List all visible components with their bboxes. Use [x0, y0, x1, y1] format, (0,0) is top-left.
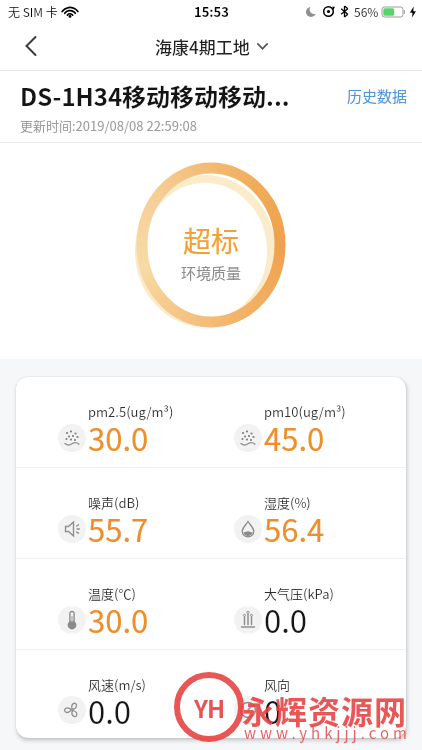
staticText: 大气压(kPa): [264, 584, 334, 603]
button[interactable]: 历史数据: [347, 85, 408, 107]
staticText: 0.0: [88, 688, 132, 732]
staticText: 45.0: [264, 415, 325, 460]
staticText: 噪声(dB): [88, 493, 140, 512]
staticText: 风速(m/s): [88, 675, 147, 694]
staticText: pm10(ug/m³): [264, 402, 346, 421]
staticText: 30.0: [88, 597, 149, 642]
staticText: pm2.5(ug/m³): [88, 402, 174, 421]
staticText: 风向: [264, 675, 291, 694]
staticText: www.yhkjjj.com: [244, 722, 411, 744]
button[interactable]: 海康4期工地: [155, 34, 268, 59]
staticText: 永辉资源网: [242, 687, 408, 733]
staticText: 更新时间:2019/08/08 22:59:08: [20, 116, 197, 135]
staticText: 55.7: [88, 506, 149, 551]
staticText: 30.0: [88, 415, 149, 460]
staticText: 湿度(%): [264, 493, 311, 512]
staticText: 温度(℃): [88, 584, 136, 603]
staticText: DS-1H34移动移动移动...: [20, 78, 347, 113]
staticText: 56%: [354, 3, 379, 20]
staticText: 超标: [183, 220, 240, 261]
staticText: 15:53: [194, 2, 229, 21]
staticText: 环境质量: [181, 262, 242, 284]
button[interactable]: [18, 33, 44, 59]
staticText: 0: [264, 688, 282, 732]
staticText: 无 SIM 卡: [8, 3, 58, 20]
staticText: 56.4: [264, 506, 325, 551]
staticText: 0.0: [264, 597, 308, 642]
staticText: YH: [194, 690, 225, 725]
staticText: 海康4期工地: [155, 34, 250, 59]
